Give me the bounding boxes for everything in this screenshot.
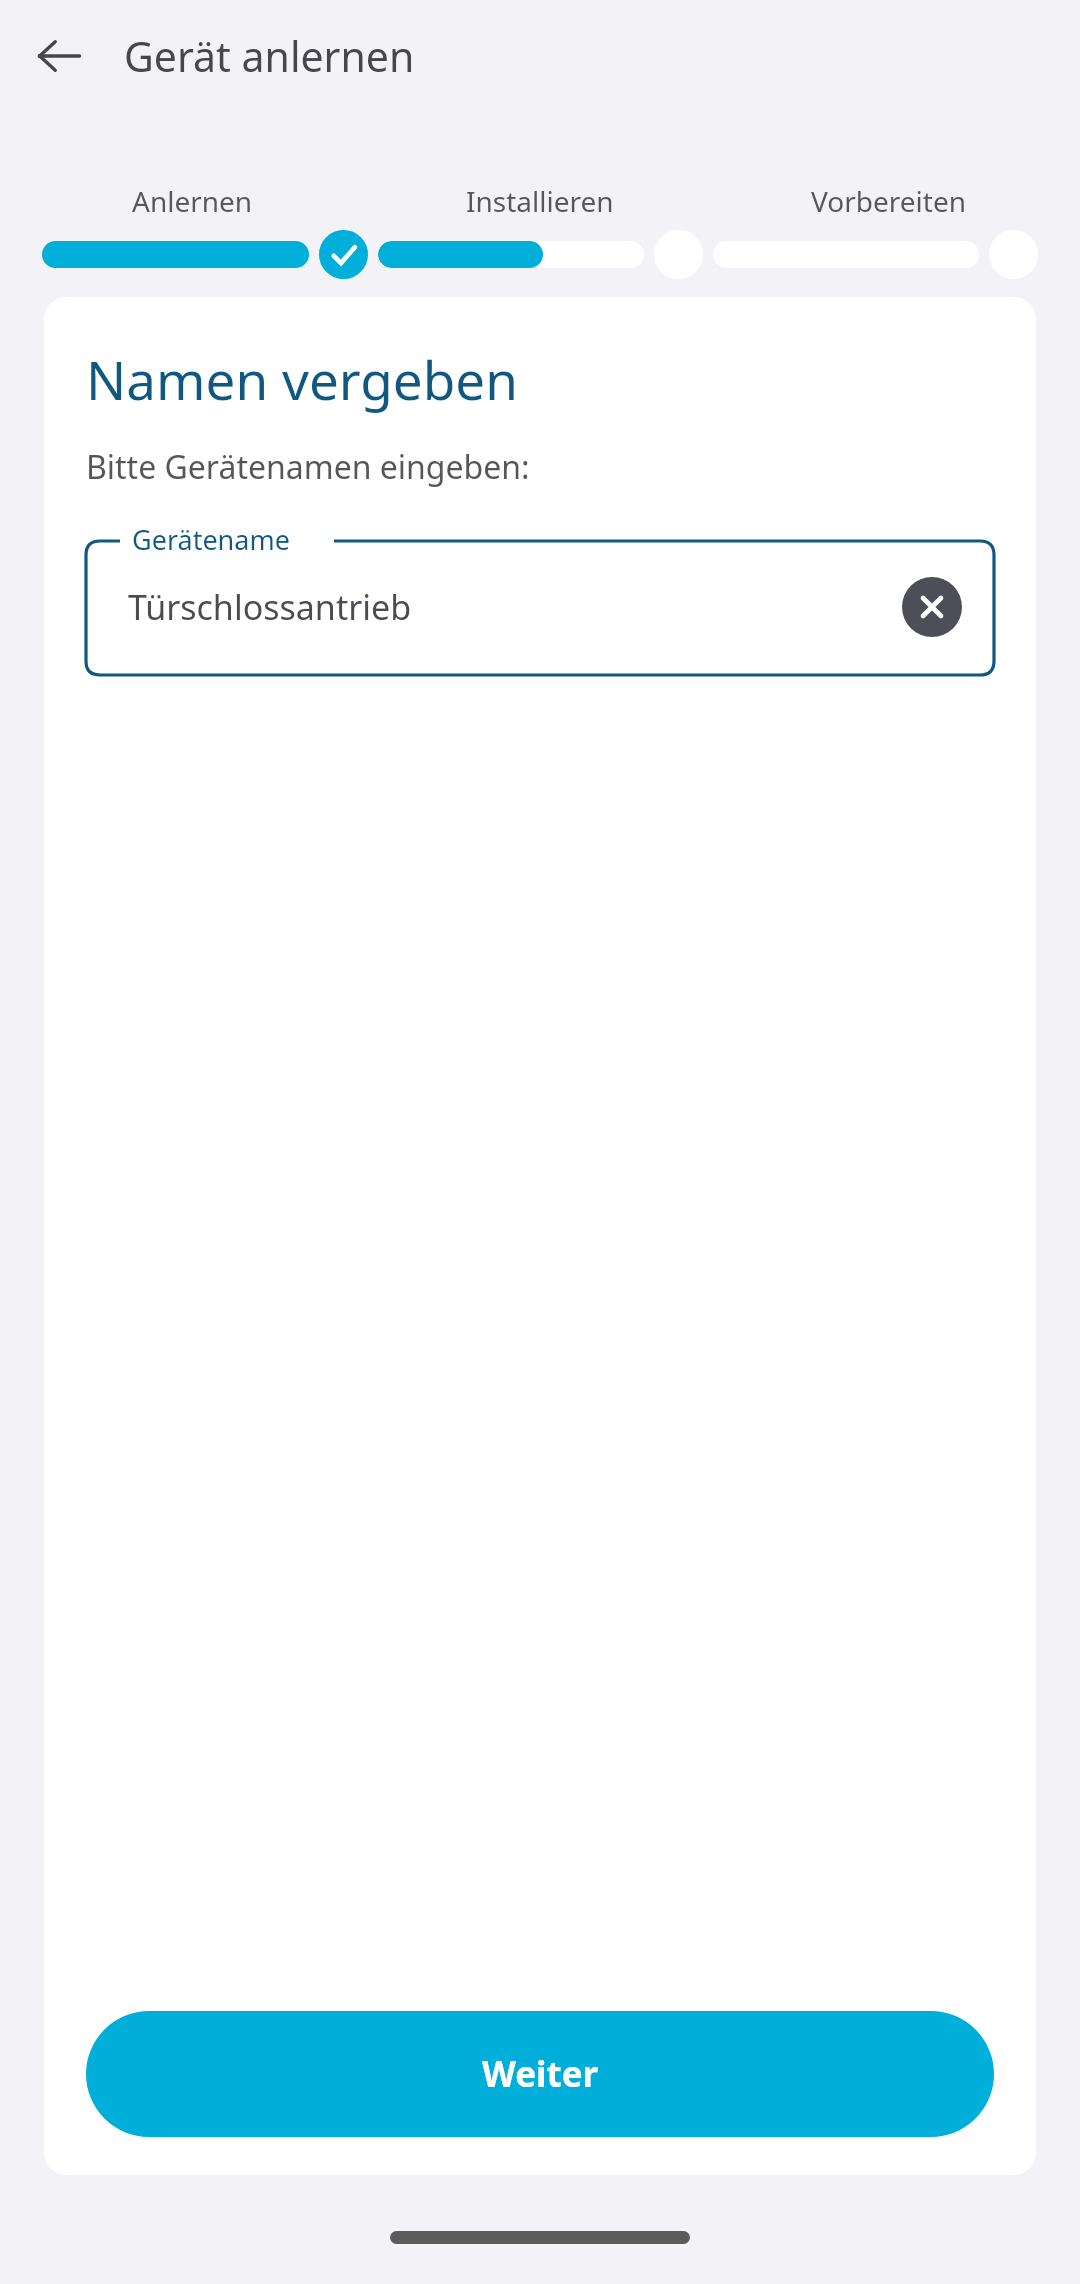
staticText: Vorbereiten <box>811 182 966 220</box>
staticText: Weiter <box>482 2050 599 2098</box>
staticText: Anlernen <box>132 182 253 220</box>
button[interactable]: Weiter <box>86 2011 994 2137</box>
staticText: Türschlossantrieb <box>128 584 412 630</box>
staticText: Namen vergeben <box>86 343 518 415</box>
staticText: Installieren <box>466 182 614 220</box>
button[interactable]: Zurück <box>20 17 98 95</box>
staticText: Bitte Gerätenamen eingeben: <box>86 445 530 489</box>
button[interactable]: Eingabe löschen <box>902 577 962 637</box>
staticText: Gerät anlernen <box>124 28 415 84</box>
staticText: Gerätename <box>132 521 290 558</box>
